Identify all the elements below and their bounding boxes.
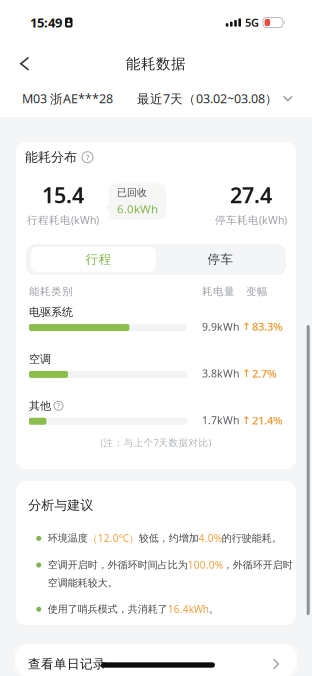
staticText: ? <box>86 152 89 162</box>
staticText: 100.0% <box>188 558 223 572</box>
staticText: 6.0kWh <box>117 201 158 217</box>
button[interactable]: 能耗分布说明 <box>82 152 93 163</box>
staticText: 停车 <box>207 252 233 267</box>
staticText: 9.9kWh <box>202 319 239 334</box>
staticText: 能耗类别 <box>29 285 73 298</box>
staticText: 耗电量 <box>202 285 235 298</box>
staticText: 环境温度 <box>48 532 88 544</box>
staticText: (注：与上个7天数据对比) <box>100 436 211 449</box>
staticText: 行程耗电(kWh) <box>27 213 99 227</box>
staticText: 电驱系统 <box>29 305 73 319</box>
staticText: （12.0°C） <box>88 531 139 545</box>
staticText: 15.4 <box>42 180 84 210</box>
staticText: 3.8kWh <box>202 366 239 381</box>
staticText: 。 <box>209 603 219 615</box>
staticText: 83.3% <box>252 319 283 334</box>
staticText: 停车耗电(kWh) <box>215 213 287 227</box>
staticText: 能耗数据 <box>126 55 186 73</box>
staticText: 空调能耗较大。 <box>48 577 118 589</box>
staticText: 2.7% <box>252 366 277 381</box>
button[interactable]: 最近7天（03.02~03.08） <box>137 90 293 107</box>
staticText: 27.4 <box>230 180 272 210</box>
staticText: 4.0% <box>199 531 222 545</box>
button[interactable]: 返回 <box>0 49 30 79</box>
button[interactable]: 查看单日记录 <box>15 644 297 676</box>
staticText: 15:49 <box>30 14 62 31</box>
staticText: 已回收 <box>117 186 147 199</box>
staticText: 查看单日记录 <box>28 656 106 672</box>
staticText: 的行驶能耗。 <box>222 532 282 544</box>
button[interactable]: 说明 <box>54 401 63 410</box>
staticText: ? <box>57 401 60 410</box>
staticText: ↑ <box>242 320 251 333</box>
staticText: 最近7天（03.02~03.08） <box>137 90 278 107</box>
button[interactable]: 行程 <box>27 247 156 272</box>
staticText: ↑ <box>242 414 251 426</box>
staticText: ↑ <box>242 367 251 379</box>
staticText: ，外循环开启时 <box>223 558 293 571</box>
staticText: 使用了哨兵模式，共消耗了 <box>48 603 168 615</box>
staticText: 空调 <box>29 352 51 366</box>
staticText: 5G <box>245 15 259 30</box>
staticText: 行程 <box>85 252 111 267</box>
staticText: 较低，约增加 <box>139 532 199 544</box>
staticText: 分析与建议 <box>28 497 93 513</box>
staticText: 16.4kWh <box>168 602 209 616</box>
staticText: 能耗分布 <box>25 149 77 165</box>
staticText: 1.7kWh <box>202 413 239 427</box>
staticText: 21.4% <box>252 413 283 428</box>
staticText: 变幅 <box>246 285 268 298</box>
button[interactable]: 停车 <box>27 247 281 272</box>
staticText: 其他 <box>29 399 51 413</box>
staticText: 空调开启时，外循环时间占比为 <box>48 558 188 571</box>
staticText: M03 浙AE***28 <box>22 90 113 107</box>
